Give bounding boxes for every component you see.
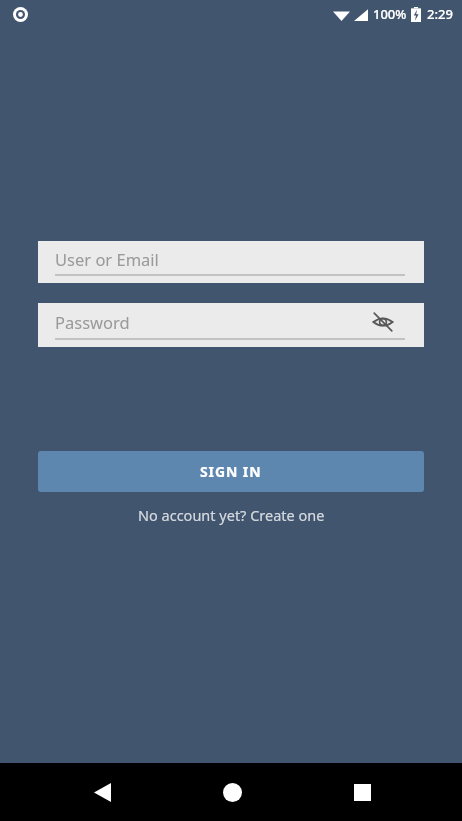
staticText: 2:29: [427, 5, 453, 23]
button[interactable]: SIGN IN: [38, 451, 424, 492]
staticText: 100%: [373, 5, 407, 23]
button[interactable]: Show password: [369, 308, 397, 336]
button[interactable]: Home: [210, 770, 254, 814]
staticText: Password: [55, 311, 130, 333]
staticText: SIGN IN: [200, 462, 262, 481]
button[interactable]: Password: [38, 303, 424, 347]
button[interactable]: Recent apps: [340, 770, 384, 814]
button[interactable]: No account yet? Create one: [0, 501, 462, 529]
staticText: User or Email: [55, 248, 159, 270]
button[interactable]: Back: [80, 770, 124, 814]
staticText: No account yet? Create one: [138, 505, 325, 525]
button[interactable]: User or Email: [38, 241, 424, 283]
